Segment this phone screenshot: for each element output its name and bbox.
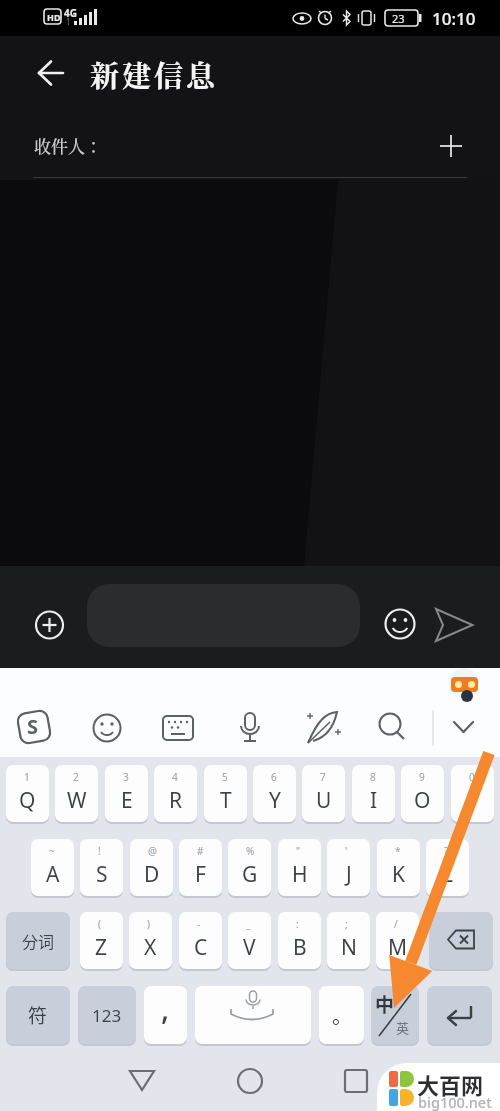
- button[interactable]: [432, 606, 476, 644]
- button[interactable]: [376, 912, 419, 969]
- button[interactable]: [55, 765, 98, 822]
- staticText: 0: [469, 770, 475, 784]
- staticText: /: [394, 917, 398, 931]
- staticText: N: [341, 933, 357, 962]
- button[interactable]: [352, 765, 395, 822]
- button[interactable]: [230, 708, 270, 748]
- staticText: *: [395, 844, 401, 858]
- staticText: -: [197, 917, 201, 931]
- button[interactable]: [278, 912, 321, 969]
- staticText: 10:10: [432, 7, 476, 30]
- button[interactable]: 。: [319, 986, 364, 1044]
- button[interactable]: [179, 912, 222, 969]
- staticText: F: [195, 860, 206, 889]
- button[interactable]: [302, 708, 342, 748]
- button[interactable]: [195, 986, 311, 1044]
- button[interactable]: [371, 708, 411, 748]
- staticText: T: [220, 786, 232, 815]
- staticText: B: [293, 933, 307, 962]
- staticText: 2: [73, 770, 79, 784]
- staticText: C: [194, 933, 208, 962]
- staticText: 9: [419, 770, 425, 784]
- staticText: S: [96, 860, 108, 889]
- staticText: D: [144, 860, 160, 889]
- button[interactable]: 123: [78, 986, 136, 1044]
- staticText: ,: [161, 988, 170, 1029]
- staticText: R: [169, 786, 183, 815]
- button[interactable]: 符: [6, 986, 70, 1044]
- button[interactable]: [426, 839, 469, 896]
- staticText: O: [414, 786, 431, 815]
- staticText: 7: [320, 770, 326, 784]
- staticText: 分词: [22, 929, 55, 952]
- staticText: !: [98, 844, 101, 858]
- button[interactable]: [226, 1058, 274, 1106]
- staticText: %: [246, 844, 255, 858]
- staticText: 1: [66, 16, 71, 27]
- button[interactable]: [6, 765, 49, 822]
- staticText: Q: [19, 786, 36, 815]
- staticText: 4: [172, 770, 178, 784]
- button[interactable]: [377, 839, 420, 896]
- button[interactable]: [0, 128, 500, 170]
- button[interactable]: [253, 765, 296, 822]
- button[interactable]: [204, 765, 247, 822]
- staticText: 3: [123, 770, 129, 784]
- staticText: ): [147, 917, 150, 931]
- button[interactable]: [15, 708, 55, 748]
- staticText: ?: [444, 844, 449, 858]
- staticText: X: [144, 933, 157, 962]
- staticText: G: [242, 860, 258, 889]
- button[interactable]: [384, 608, 416, 640]
- staticText: 新建信息: [90, 54, 219, 96]
- button[interactable]: [327, 912, 370, 969]
- staticText: 1: [24, 770, 30, 784]
- button[interactable]: [278, 839, 321, 896]
- staticText: 8: [370, 770, 376, 784]
- staticText: 英: [396, 1018, 410, 1037]
- staticText: (: [98, 917, 101, 931]
- staticText: M: [388, 933, 408, 962]
- button[interactable]: [429, 912, 493, 969]
- button[interactable]: [427, 986, 492, 1044]
- staticText: HD: [47, 11, 61, 23]
- staticText: @: [148, 844, 157, 858]
- button[interactable]: [401, 765, 444, 822]
- button[interactable]: [327, 839, 370, 896]
- button[interactable]: [80, 839, 123, 896]
- button[interactable]: [88, 708, 128, 748]
- staticText: 。: [332, 1001, 352, 1030]
- staticText: Z: [95, 933, 108, 962]
- staticText: :: [296, 917, 299, 931]
- button[interactable]: 新建信息: [30, 52, 250, 96]
- staticText: Y: [269, 786, 281, 815]
- button[interactable]: [129, 912, 172, 969]
- staticText: L: [442, 860, 454, 889]
- staticText: V: [243, 933, 256, 962]
- button[interactable]: [451, 765, 494, 822]
- button[interactable]: [228, 839, 271, 896]
- staticText: 符: [28, 1001, 48, 1029]
- button[interactable]: [158, 708, 198, 748]
- button[interactable]: [105, 765, 148, 822]
- button[interactable]: [154, 765, 197, 822]
- button[interactable]: [118, 1058, 166, 1106]
- button[interactable]: ,: [144, 986, 187, 1044]
- button[interactable]: [302, 765, 345, 822]
- staticText: _: [246, 917, 251, 931]
- button[interactable]: [31, 839, 74, 896]
- button[interactable]: [80, 912, 123, 969]
- staticText: 大百网: [417, 1068, 484, 1100]
- button[interactable]: [228, 912, 271, 969]
- staticText: E: [121, 786, 133, 815]
- button[interactable]: [33, 609, 66, 642]
- staticText: 5: [222, 770, 228, 784]
- staticText: W: [67, 786, 87, 815]
- button[interactable]: [179, 839, 222, 896]
- button[interactable]: [130, 839, 173, 896]
- button[interactable]: [333, 1058, 381, 1106]
- button[interactable]: [371, 986, 419, 1044]
- button[interactable]: 分词: [6, 912, 70, 969]
- button[interactable]: [444, 708, 484, 748]
